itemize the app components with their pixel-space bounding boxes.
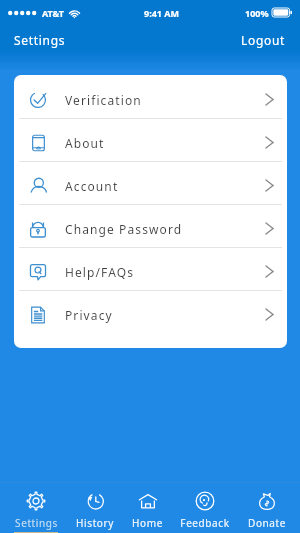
button[interactable]: Home [132,482,163,532]
button[interactable]: History [76,482,114,532]
button[interactable]: Help/FAQs [14,248,287,290]
staticText: Logout [241,32,286,48]
button[interactable]: Feedback [180,482,230,532]
staticText: Donate [248,516,286,530]
button[interactable]: Settings [8,29,72,51]
staticText: AT&T [42,7,65,19]
staticText: Settings [15,516,58,530]
staticText: About [65,135,105,151]
button[interactable]: Change Password [14,205,287,247]
button[interactable]: Settings [14,482,58,533]
button[interactable]: Privacy [14,291,287,333]
staticText: Settings [14,32,66,48]
staticText: History [76,516,114,530]
button[interactable]: Logout [235,29,292,51]
staticText: 9:41 AM [144,7,180,19]
staticText: 100% [245,7,269,19]
staticText: Home [132,516,163,530]
button[interactable]: Account [14,162,287,204]
staticText: Help/FAQs [65,264,135,280]
staticText: Account [65,178,119,194]
button[interactable]: Verification [14,76,287,118]
staticText: Privacy [65,307,113,323]
staticText: Feedback [180,516,230,530]
button[interactable]: Donate [248,482,286,532]
staticText: Verification [65,92,142,108]
button[interactable]: About [14,119,287,161]
staticText: Change Password [65,221,183,237]
